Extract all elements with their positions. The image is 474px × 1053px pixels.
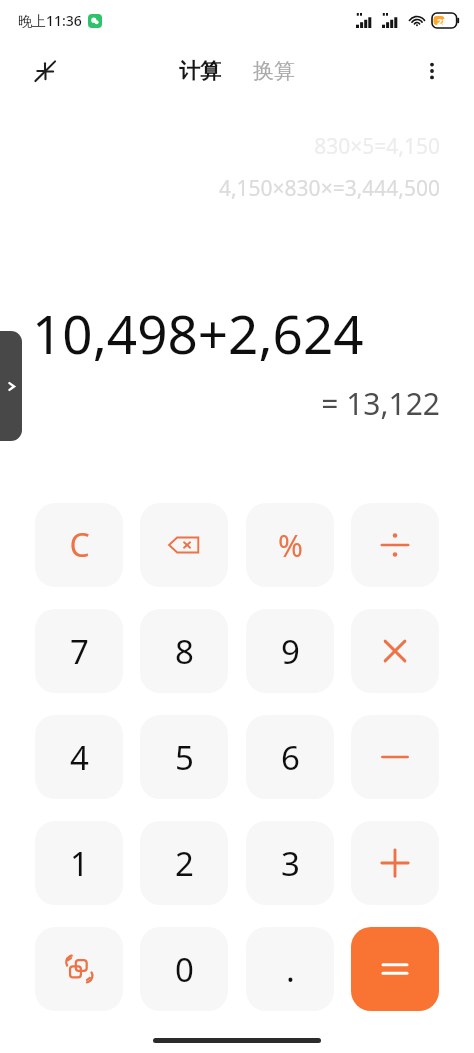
staticText: 计算	[179, 58, 221, 84]
button[interactable]: Divide	[351, 503, 439, 587]
staticText: 7	[70, 629, 89, 674]
button[interactable]: 7	[35, 609, 123, 693]
staticText: C	[69, 523, 90, 567]
staticText: 0	[175, 947, 194, 992]
staticText: 5	[175, 735, 194, 780]
button[interactable]: Backspace	[140, 503, 228, 587]
button[interactable]: 9	[246, 609, 334, 693]
staticText: = 13,122	[0, 383, 440, 424]
button[interactable]: Decimal point	[246, 927, 334, 1011]
button[interactable]: 5	[140, 715, 228, 799]
button[interactable]: C	[35, 503, 123, 587]
staticText: 2	[175, 841, 194, 886]
button[interactable]: 6	[246, 715, 334, 799]
button[interactable]: 8	[140, 609, 228, 693]
staticText: 10,498+2,624	[32, 297, 448, 369]
staticText: 晚上11:36	[18, 11, 82, 30]
staticText: 830×5=4,150	[0, 132, 440, 161]
button[interactable]: Collapse	[22, 48, 68, 94]
button[interactable]: Convert	[35, 927, 123, 1011]
button[interactable]: Percent	[246, 503, 334, 587]
button[interactable]: Multiply	[351, 609, 439, 693]
button[interactable]: 2	[140, 821, 228, 905]
staticText: 28	[437, 15, 448, 27]
button[interactable]: 1	[35, 821, 123, 905]
staticText: 1	[70, 841, 89, 886]
staticText: 换算	[253, 58, 295, 84]
button[interactable]: 计算	[171, 52, 229, 90]
button[interactable]: Minus	[351, 715, 439, 799]
staticText: .	[286, 947, 295, 992]
button[interactable]: Equals	[351, 927, 439, 1011]
button[interactable]: More options	[410, 49, 454, 93]
button[interactable]: 3	[246, 821, 334, 905]
button[interactable]: 4	[35, 715, 123, 799]
button[interactable]: 换算	[245, 52, 303, 90]
staticText: 4	[70, 735, 89, 780]
button[interactable]: 0	[140, 927, 228, 1011]
button[interactable]: Open side panel	[0, 331, 22, 441]
staticText: 4,150×830×=3,444,500	[0, 174, 440, 203]
staticText: %	[278, 525, 303, 566]
staticText: 9	[281, 629, 300, 674]
button[interactable]: Plus	[351, 821, 439, 905]
staticText: 3	[281, 841, 300, 886]
staticText: 8	[175, 629, 194, 674]
staticText: 6	[281, 735, 300, 780]
